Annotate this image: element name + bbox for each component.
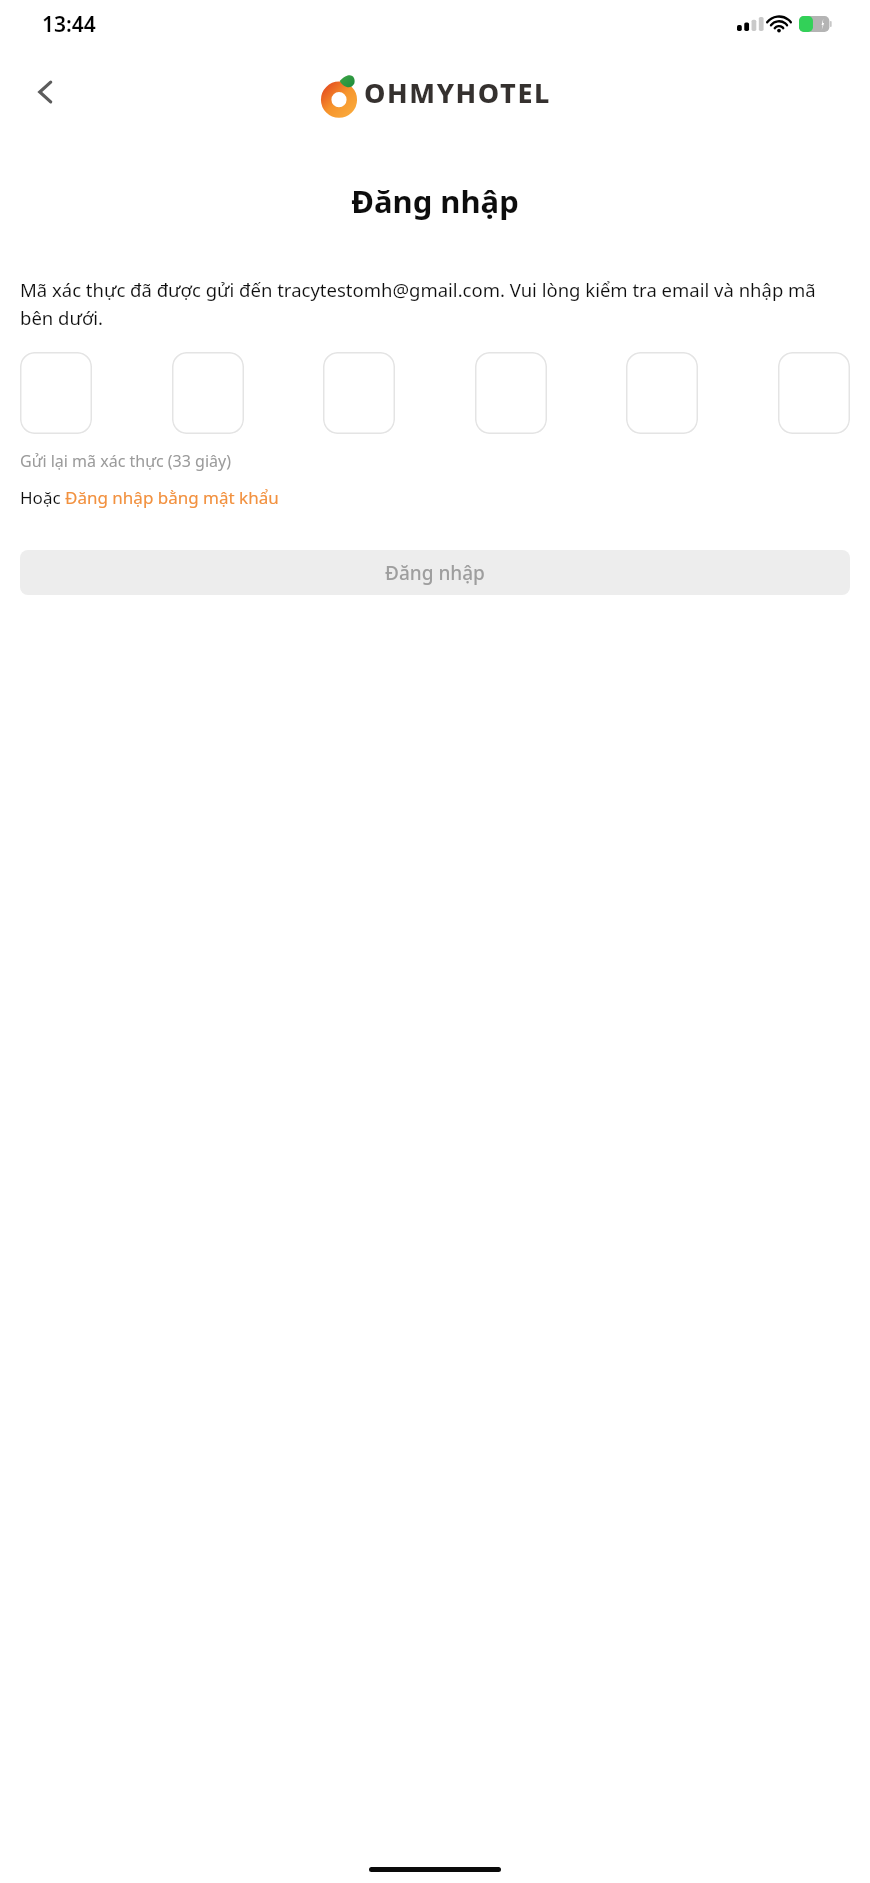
- button[interactable]: Đăng nhập: [20, 550, 850, 595]
- staticText: Đăng nhập: [0, 180, 870, 222]
- button[interactable]: Ô nhập mã: [778, 352, 850, 434]
- button[interactable]: Ô nhập mã: [626, 352, 698, 434]
- staticText: Hoặc: [20, 486, 65, 509]
- button[interactable]: Ô nhập mã: [172, 352, 244, 434]
- staticText: OHMYHOTEL: [364, 74, 552, 111]
- button[interactable]: Ô nhập mã: [323, 352, 395, 434]
- staticText: Đăng nhập: [385, 560, 485, 586]
- staticText: 13:44: [42, 10, 96, 39]
- button[interactable]: Đăng nhập bằng mật khẩu: [65, 486, 279, 509]
- button[interactable]: Gửi lại mã xác thực (33 giây): [20, 450, 231, 472]
- button[interactable]: Back: [20, 66, 72, 118]
- staticText: Mã xác thực đã được gửi đến tracytestomh…: [20, 277, 850, 330]
- button[interactable]: Ô nhập mã: [20, 352, 92, 434]
- button[interactable]: Ô nhập mã: [475, 352, 547, 434]
